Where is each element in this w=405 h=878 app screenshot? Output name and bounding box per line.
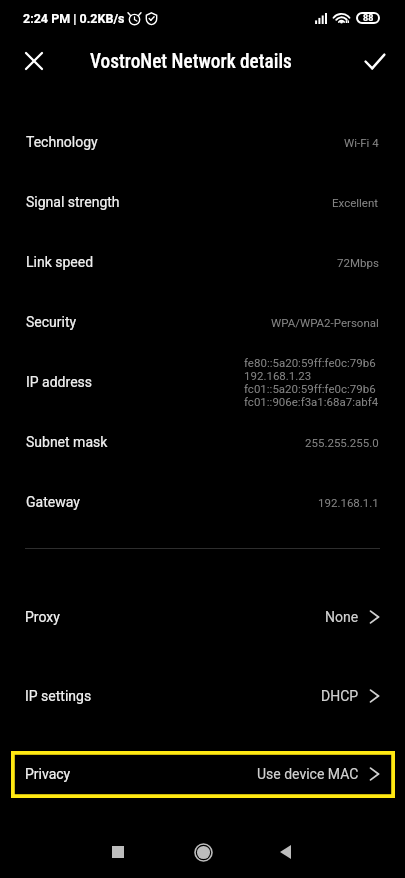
- staticText: IP settings: [25, 688, 92, 704]
- staticText: Signal strength: [26, 194, 120, 210]
- staticText: Excellent: [332, 196, 379, 209]
- button[interactable]: Save: [354, 41, 394, 81]
- button[interactable]: Security: [0, 292, 405, 352]
- staticText: 72Mbps: [337, 256, 379, 269]
- staticText: Technology: [26, 134, 98, 150]
- staticText: Link speed: [26, 254, 94, 270]
- staticText: Wi-Fi 4: [344, 136, 379, 149]
- button[interactable]: Subnet mask: [0, 412, 405, 472]
- staticText: fc01::5a20:59ff:fe0c:79b6: [244, 382, 376, 395]
- staticText: 192.168.1.1: [318, 496, 379, 509]
- staticText: Proxy: [25, 609, 60, 625]
- button[interactable]: Gateway: [0, 472, 405, 532]
- staticText: VostroNet Network details: [90, 50, 292, 73]
- button[interactable]: Recent apps: [93, 827, 143, 877]
- button[interactable]: Back: [260, 827, 310, 877]
- button[interactable]: Proxy: [0, 594, 405, 640]
- staticText: Security: [26, 314, 77, 330]
- staticText: Subnet mask: [26, 434, 108, 450]
- button[interactable]: IP settings: [0, 673, 405, 719]
- button[interactable]: Technology: [0, 112, 405, 172]
- staticText: DHCP: [321, 688, 359, 704]
- staticText: IP address: [26, 374, 93, 390]
- button[interactable]: Signal strength: [0, 172, 405, 232]
- staticText: Privacy: [25, 766, 71, 782]
- staticText: 88: [363, 13, 374, 24]
- staticText: Gateway: [26, 494, 80, 510]
- button[interactable]: Close: [14, 41, 54, 81]
- staticText: fe80::5a20:59ff:fe0c:79b6: [244, 356, 376, 369]
- staticText: 255.255.255.0: [305, 436, 379, 449]
- button[interactable]: Home: [178, 827, 228, 877]
- staticText: 2:24 PM | 0.2KB/s: [23, 11, 125, 26]
- button[interactable]: Link speed: [0, 232, 405, 292]
- staticText: Use device MAC: [257, 766, 359, 782]
- button[interactable]: IP address: [0, 352, 405, 412]
- staticText: None: [325, 609, 359, 625]
- staticText: WPA/WPA2-Personal: [271, 316, 379, 329]
- staticText: 192.168.1.23: [244, 369, 312, 382]
- button[interactable]: Privacy: [0, 751, 405, 797]
- staticText: fc01::906e:f3a1:68a7:abf4: [244, 395, 379, 408]
